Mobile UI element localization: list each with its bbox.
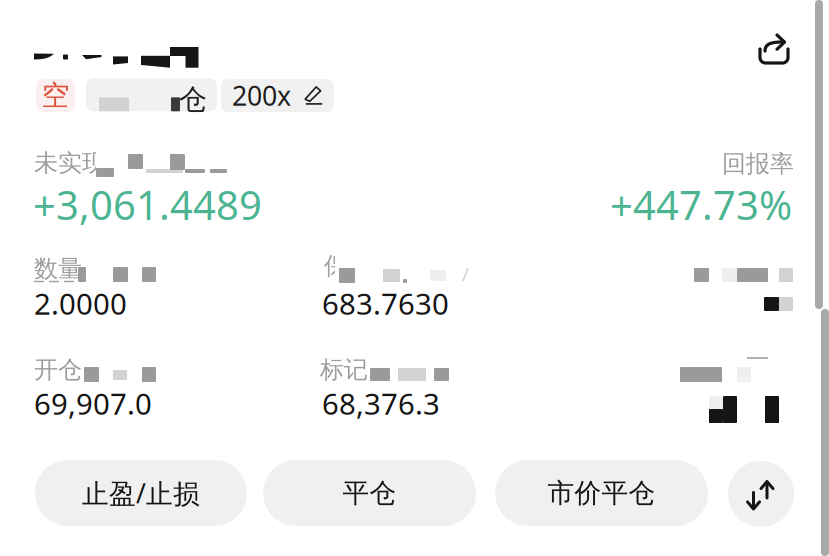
staticText: 回报率 [722,149,794,178]
staticText: +3,061.4489 [33,178,262,231]
staticText: +447.73% [610,178,792,231]
staticText: 仓 [179,82,207,117]
button[interactable]: 平仓 [263,460,476,526]
staticText: 止盈/止损 [82,475,200,511]
button[interactable]: 止盈/止损 [35,460,247,526]
staticText: 683.7630 [322,284,449,323]
button[interactable]: Share [748,23,800,75]
button[interactable]: 200x [221,79,334,112]
staticText: 标记 [320,355,368,384]
staticText: 开仓 [34,355,82,384]
button[interactable]: Reverse position [728,461,794,527]
staticText: 保 [324,251,348,281]
staticText: 平仓 [342,477,396,509]
staticText: 市价平仓 [547,477,655,509]
staticText: 2.0000 [34,284,127,323]
staticText: 200x [232,78,291,113]
button[interactable]: 市价平仓 [495,460,708,526]
staticText: 69,907.0 [34,384,152,423]
staticText: 空 [41,78,69,113]
staticText: 68,376.3 [322,384,440,423]
staticText: 未实现 [34,148,106,178]
staticText: 数量 [34,254,82,283]
